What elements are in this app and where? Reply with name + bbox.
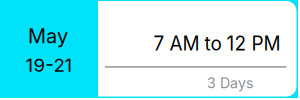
button[interactable]: May: [0, 0, 300, 100]
staticText: 19-21: [25, 54, 72, 76]
staticText: 3 Days: [207, 74, 253, 91]
staticText: 7 AM to 12 PM: [153, 32, 280, 55]
staticText: May: [28, 24, 68, 48]
